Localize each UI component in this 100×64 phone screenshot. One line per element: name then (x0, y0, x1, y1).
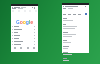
button[interactable] (62, 46, 89, 50)
button[interactable]: Tab (19, 46, 23, 50)
button[interactable] (11, 34, 38, 37)
button[interactable]: Tab (32, 46, 36, 50)
button[interactable]: Search (62, 5, 89, 8)
button[interactable] (11, 40, 38, 43)
button[interactable] (11, 43, 38, 46)
button[interactable] (11, 28, 38, 31)
button[interactable] (62, 32, 89, 38)
button[interactable] (62, 58, 89, 62)
button[interactable] (11, 25, 38, 28)
button[interactable]: Tab (13, 46, 17, 50)
button[interactable] (11, 37, 38, 40)
staticText: Google (16, 19, 34, 26)
button[interactable] (62, 24, 89, 30)
button[interactable] (62, 52, 89, 56)
button[interactable] (11, 31, 38, 34)
button[interactable]: Address bar (11, 6, 38, 9)
button[interactable] (62, 18, 89, 22)
button[interactable] (62, 40, 89, 44)
button[interactable]: Tab (26, 46, 30, 50)
